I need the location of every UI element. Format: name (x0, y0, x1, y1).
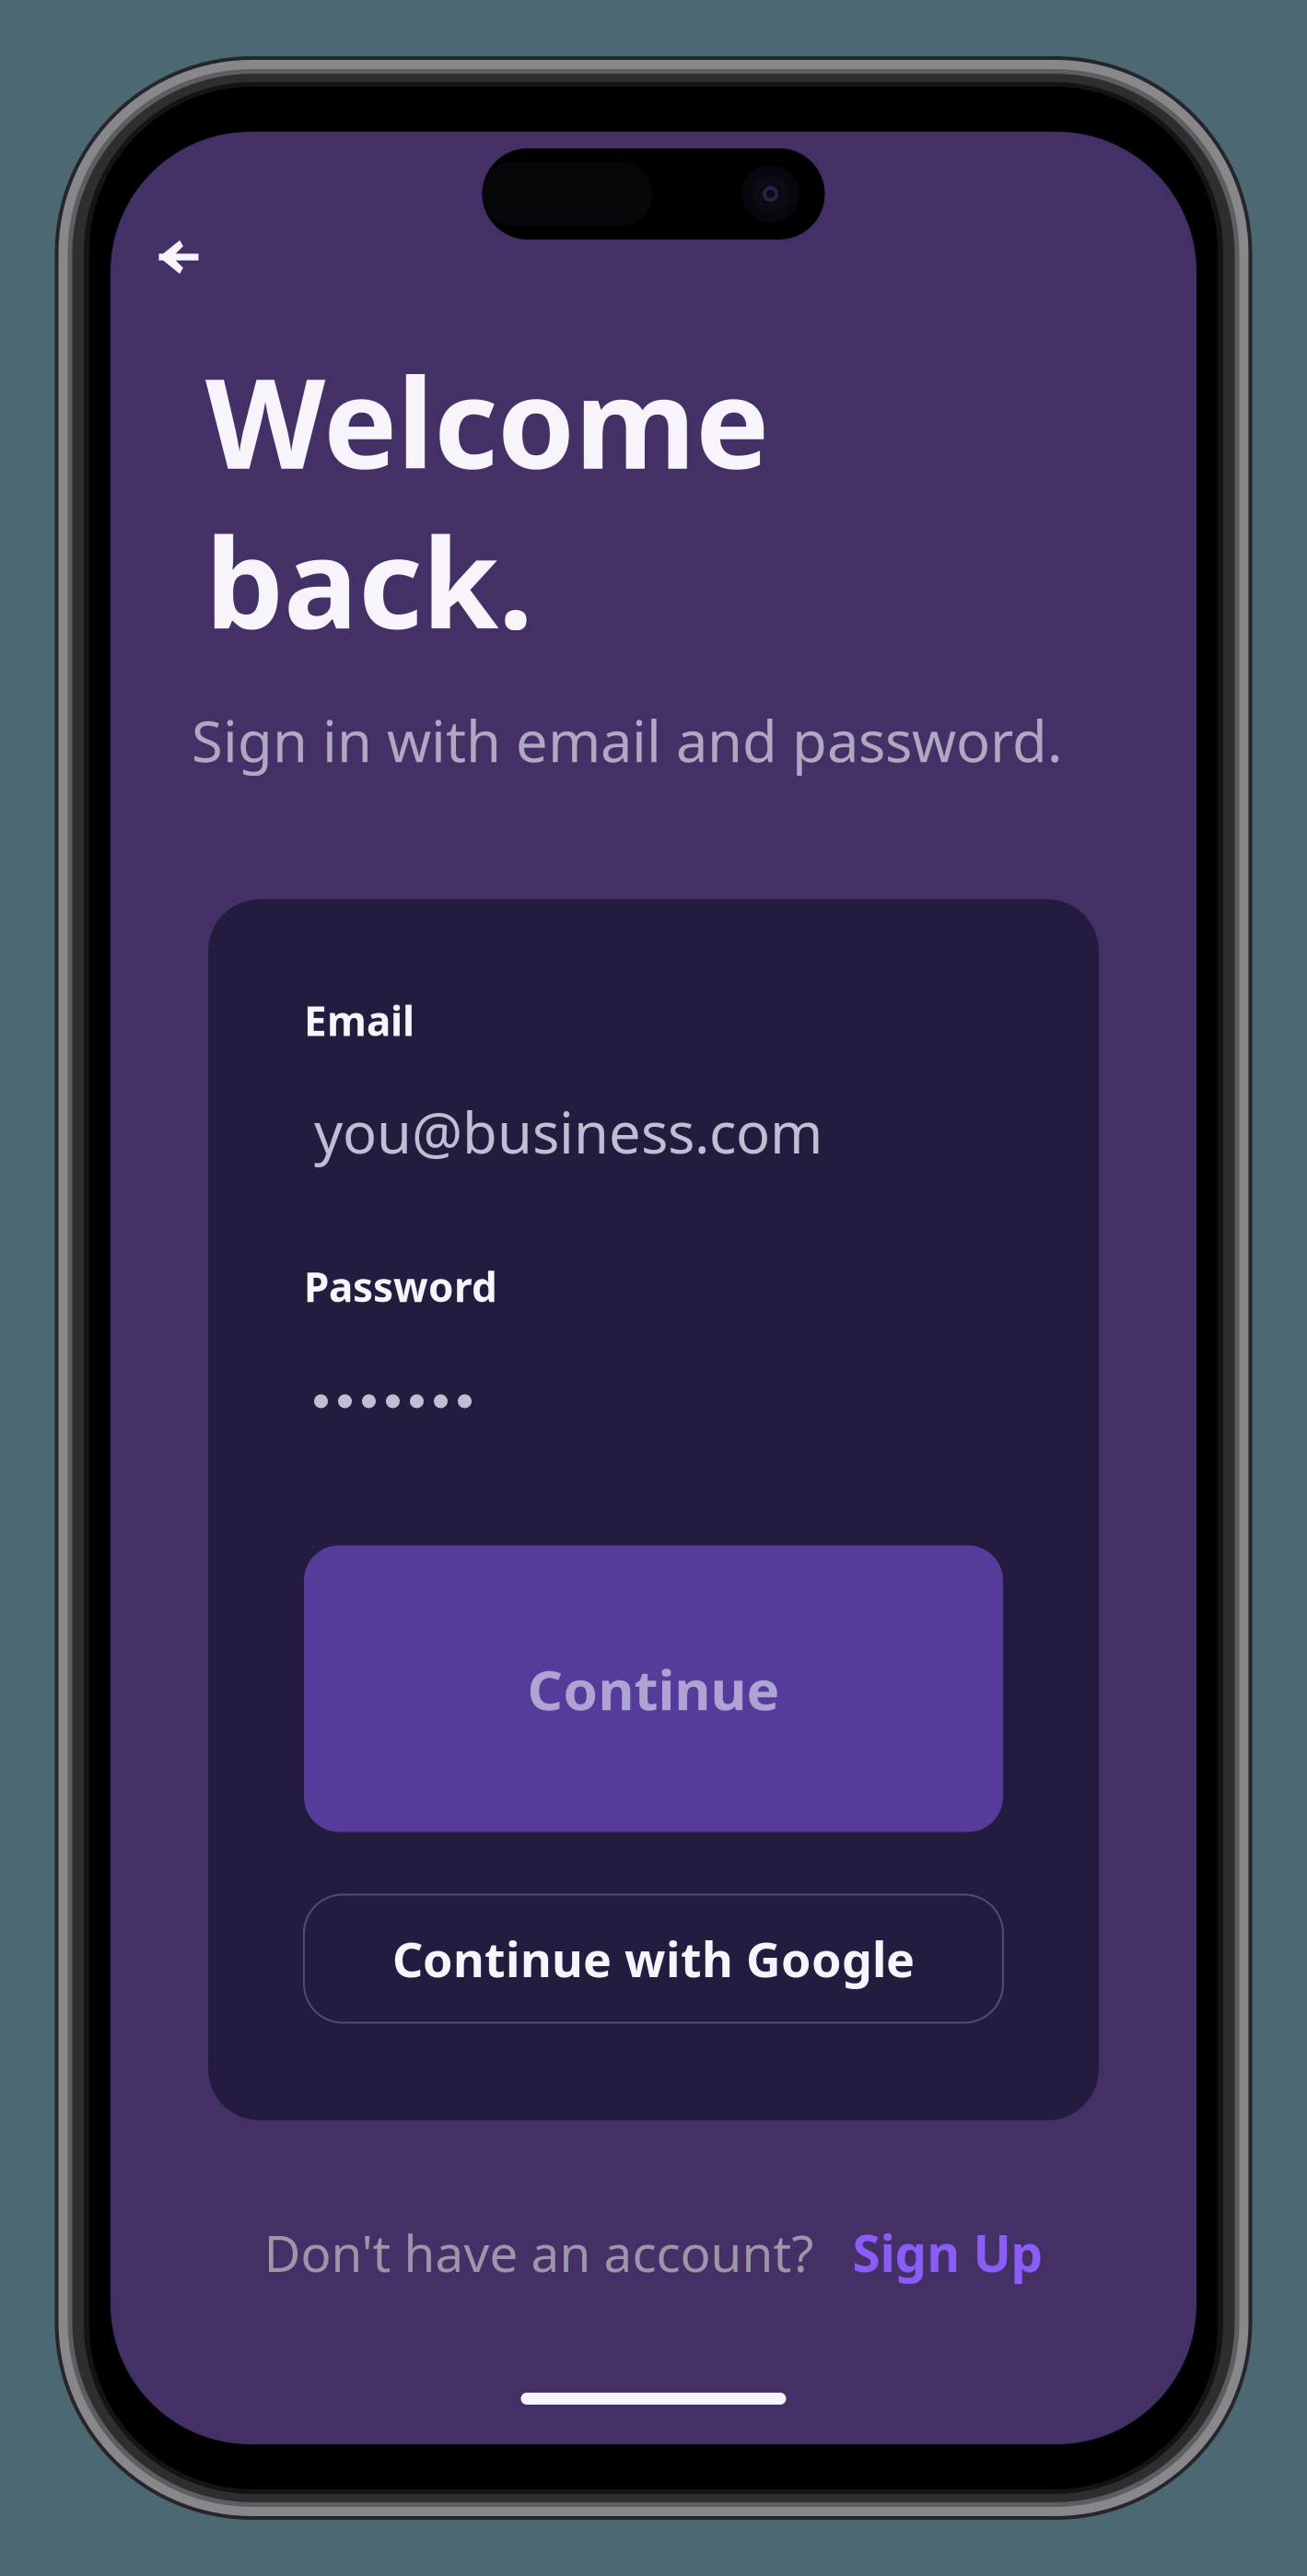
staticText: Continue with Google (392, 1927, 915, 1991)
button[interactable]: Back (111, 203, 249, 311)
staticText: back. (205, 498, 533, 663)
staticText: you@business.com (314, 1094, 823, 1169)
staticText: Email (304, 993, 414, 1047)
staticText: Don't have an account? (264, 2219, 814, 2286)
button[interactable]: Sign Up (852, 2219, 1043, 2286)
button[interactable]: Continue (304, 1545, 1003, 1832)
staticText: Sign Up (852, 2219, 1043, 2286)
button[interactable]: Continue with Google (304, 1895, 1003, 2023)
staticText: Sign in with email and password. (192, 703, 1062, 778)
staticText: Continue (527, 1652, 780, 1725)
staticText: Password (304, 1259, 497, 1313)
staticText: Welcome (205, 338, 769, 503)
